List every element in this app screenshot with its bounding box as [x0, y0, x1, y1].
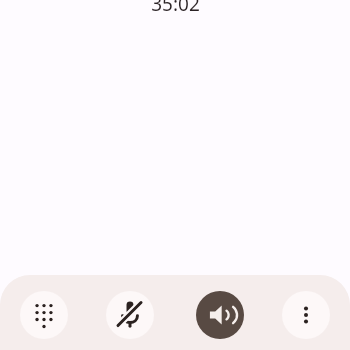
staticText: 35:02: [151, 0, 200, 17]
button[interactable]: Dialpad: [20, 291, 68, 339]
button[interactable]: Mute microphone: [106, 291, 154, 339]
button[interactable]: Speaker: [196, 291, 244, 339]
button[interactable]: More options: [282, 291, 330, 339]
